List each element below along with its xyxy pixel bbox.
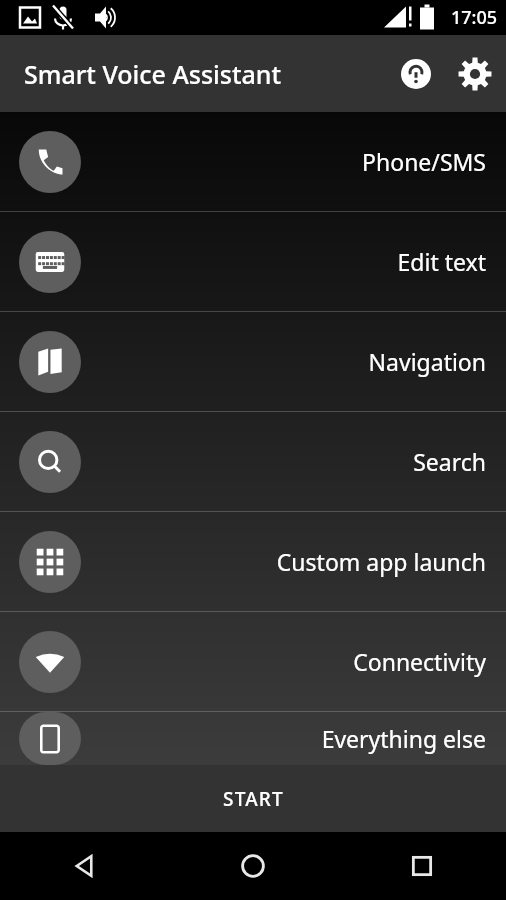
staticText: 17:05 <box>451 5 498 30</box>
button[interactable]: Connectivity <box>0 612 506 711</box>
staticText: Search <box>93 446 486 477</box>
button[interactable]: Navigation <box>0 312 506 411</box>
button[interactable]: Search <box>0 412 506 511</box>
staticText: START <box>223 786 284 812</box>
staticText: Smart Voice Assistant <box>24 57 282 91</box>
button[interactable]: Back <box>0 832 168 900</box>
button[interactable]: START <box>0 765 506 832</box>
button[interactable]: Help <box>388 46 444 102</box>
staticText: Navigation <box>93 346 486 377</box>
button[interactable]: Everything else <box>0 712 506 765</box>
staticText: Custom app launch <box>93 546 486 577</box>
button[interactable]: Custom app launch <box>0 512 506 611</box>
button[interactable]: Settings <box>444 43 506 105</box>
staticText: Phone/SMS <box>93 146 486 177</box>
staticText: Connectivity <box>93 646 486 677</box>
button[interactable]: Phone/SMS <box>0 112 506 211</box>
button[interactable]: Home <box>168 832 337 900</box>
button[interactable]: Edit text <box>0 212 506 311</box>
button[interactable]: Recent apps <box>337 832 506 900</box>
staticText: Edit text <box>93 246 486 277</box>
staticText: Everything else <box>93 723 486 754</box>
